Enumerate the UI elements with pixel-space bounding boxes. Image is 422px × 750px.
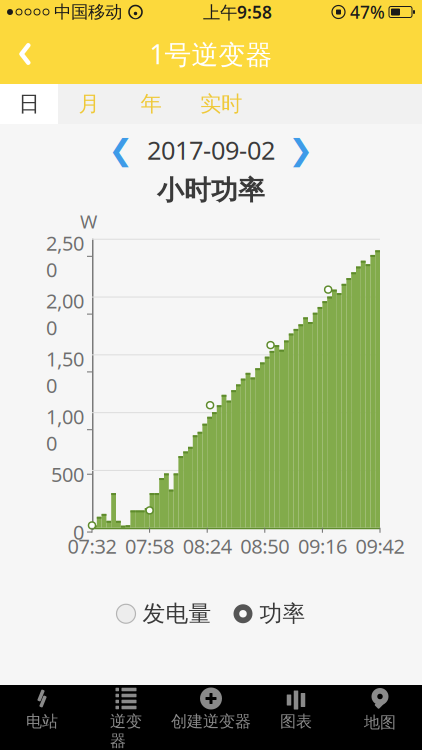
- staticText: 500: [51, 461, 84, 488]
- button[interactable]: 后一天: [281, 133, 321, 167]
- staticText: 09:42: [355, 533, 404, 559]
- button[interactable]: 图表: [254, 682, 338, 750]
- staticText: 2,500: [46, 230, 84, 283]
- staticText: 实时: [200, 91, 242, 117]
- staticText: 1,500: [46, 345, 84, 398]
- staticText: 0: [73, 519, 84, 545]
- button[interactable]: 地图: [338, 682, 422, 750]
- staticText: 地图: [364, 712, 396, 732]
- staticText: 创建逆变器: [171, 711, 251, 731]
- staticText: ❯: [288, 133, 313, 167]
- staticText: 07:32: [67, 533, 116, 559]
- staticText: 逆变 器: [110, 711, 142, 750]
- button[interactable]: 返回: [0, 24, 50, 84]
- staticText: 08:50: [240, 533, 289, 559]
- staticText: W: [80, 209, 97, 234]
- button[interactable]: 功率: [233, 594, 305, 634]
- button[interactable]: 日: [0, 84, 58, 124]
- staticText: 图表: [280, 711, 312, 731]
- button[interactable]: 发电量: [116, 594, 211, 634]
- staticText: 1,000: [46, 403, 84, 456]
- button[interactable]: 电站: [0, 682, 84, 750]
- button[interactable]: 年: [120, 84, 182, 124]
- staticText: 电站: [26, 711, 58, 731]
- staticText: 上午9:58: [203, 0, 272, 23]
- staticText: 日: [18, 91, 39, 117]
- staticText: 2,000: [46, 288, 84, 341]
- staticText: 发电量: [142, 600, 211, 628]
- button[interactable]: 月: [58, 84, 120, 124]
- staticText: 月: [78, 91, 99, 117]
- button[interactable]: 前一天: [101, 133, 141, 167]
- button[interactable]: 实时: [182, 84, 260, 124]
- staticText: 09:16: [298, 533, 347, 559]
- button[interactable]: 创建逆变器: [168, 682, 254, 750]
- staticText: 2017-09-02: [147, 133, 275, 167]
- staticText: 功率: [259, 600, 305, 628]
- button[interactable]: 逆变 器: [84, 682, 168, 750]
- staticText: ❮: [108, 133, 133, 167]
- staticText: 年: [140, 91, 161, 117]
- staticText: 08:24: [183, 533, 232, 559]
- staticText: 中国移动: [54, 1, 122, 23]
- staticText: 47%: [350, 0, 385, 23]
- staticText: 07:58: [125, 533, 174, 559]
- staticText: 1号逆变器: [149, 36, 272, 72]
- staticText: 小时功率: [157, 174, 265, 207]
